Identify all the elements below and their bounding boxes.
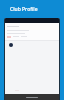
button[interactable]: Club avatar — [5, 18, 59, 100]
button[interactable]: Club avatar — [9, 43, 13, 47]
staticText: Club Profile — [10, 6, 38, 13]
